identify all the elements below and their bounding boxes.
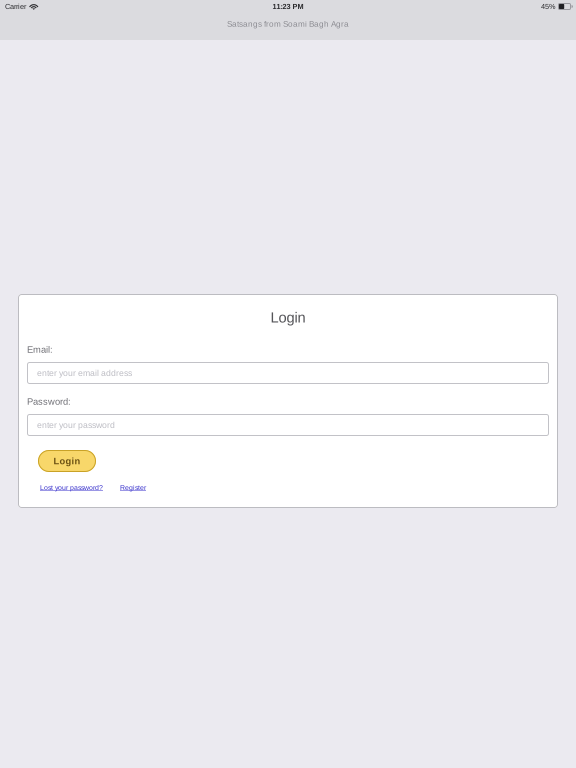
staticText: Email: [27, 344, 53, 355]
staticText: Register [120, 484, 146, 491]
staticText: enter your password [37, 420, 115, 430]
staticText: Password: [27, 396, 71, 407]
staticText: Satsangs from Soami Bagh Agra [227, 19, 349, 29]
staticText: enter your email address [37, 368, 132, 378]
staticText: 11:23 PM [272, 2, 303, 11]
button[interactable]: Lost your password? [40, 484, 103, 491]
button[interactable]: Login [38, 450, 96, 472]
staticText: 45% [541, 2, 556, 11]
staticText: Carrier [5, 2, 26, 11]
button[interactable]: Register [120, 484, 146, 491]
staticText: Login [53, 456, 80, 466]
staticText: Login [270, 309, 305, 326]
staticText: Lost your password? [40, 484, 103, 491]
